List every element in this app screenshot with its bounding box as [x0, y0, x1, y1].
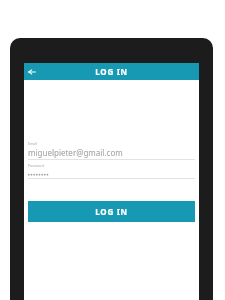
- button[interactable]: LOG IN: [28, 201, 195, 222]
- button[interactable]: Email: [28, 141, 195, 160]
- staticText: LOG IN: [24, 66, 199, 77]
- button[interactable]: Password: [28, 163, 195, 179]
- staticText: LOG IN: [95, 206, 128, 217]
- staticText: Password: [28, 163, 44, 168]
- staticText: miguelpieter@gmail.com: [28, 147, 123, 158]
- staticText: Email: [28, 141, 37, 146]
- button[interactable]: Back: [24, 63, 40, 80]
